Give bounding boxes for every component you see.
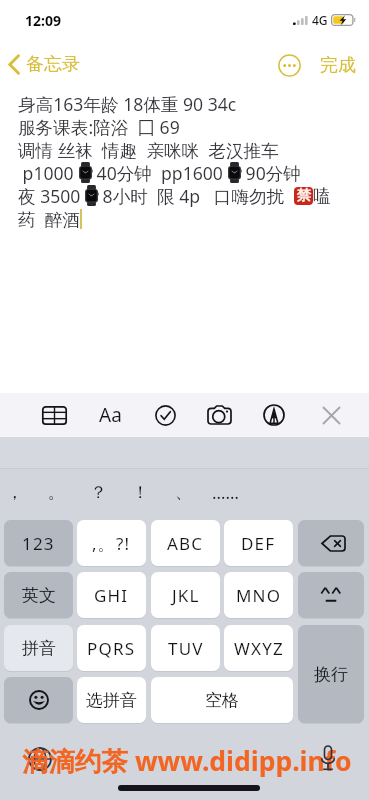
button[interactable]: MNO [224,572,293,618]
staticText: 身高163年龄 18体重 90 34c [18,92,237,115]
staticText: ABC [167,532,204,555]
button[interactable]: ,。?! [77,520,146,566]
staticText: 换行 [314,664,348,685]
button[interactable]: ！ [119,470,161,515]
staticText: 滴滴约茶 www.didipp.info [22,743,352,779]
button[interactable]: Kaomoji [298,572,364,618]
staticText: 8小时 限 4p 口嗨勿扰 [98,184,294,207]
button[interactable]: PQRS [77,625,146,671]
button[interactable] [4,677,73,723]
button[interactable]: 备忘录 [7,53,80,76]
staticText: MNO [236,584,282,607]
staticText: PQRS [87,637,136,660]
staticText: 空格 [205,690,239,711]
staticText: 英文 [22,585,56,606]
staticText: 4G [312,12,328,28]
button[interactable]: ABC [151,520,220,566]
staticText: …… [212,481,239,504]
button[interactable] [205,393,233,437]
button[interactable]: 空格 [151,677,293,723]
staticText: TUV [168,637,204,660]
staticText: 123 [22,532,55,555]
button[interactable] [262,393,286,437]
staticText: ， [6,482,23,503]
button[interactable]: 123 [4,520,73,566]
button[interactable]: 完成 [320,54,356,77]
button[interactable]: WXYZ [224,625,293,671]
button[interactable]: GHI [77,572,146,618]
staticText: ,。?! [92,532,131,555]
button[interactable]: 换行 [298,625,364,723]
staticText: GHI [94,584,129,607]
staticText: 。 [48,482,65,503]
staticText: 12:09 [25,11,61,30]
staticText: 备忘录 [26,53,80,76]
button[interactable]: Dictation [320,745,336,772]
button[interactable]: TUV [151,625,220,671]
staticText: 40分钟 pp1600 [92,161,228,184]
staticText: 调情 丝袜 情趣 亲咪咪 老汉推车 [18,138,279,161]
button[interactable]: Aa [93,393,127,437]
button[interactable]: ， [0,470,35,515]
staticText: 夜 3500 [18,184,85,207]
button[interactable]: 拼音 [4,625,73,671]
staticText: ？ [90,482,107,503]
button[interactable]: 、 [162,470,204,515]
button[interactable] [153,393,177,437]
button[interactable]: Switch keyboard [28,747,52,771]
staticText: 拼音 [22,638,56,659]
button[interactable]: More options [278,54,301,77]
button[interactable]: 。 [35,470,77,515]
staticText: 、 [175,482,192,503]
staticText: 嗑 [313,185,331,207]
button[interactable] [41,393,67,437]
staticText: p1000 [18,161,79,184]
button[interactable]: DEF [224,520,293,566]
button[interactable] [298,572,364,618]
button[interactable]: ？ [77,470,119,515]
staticText: 90分钟 [241,161,301,184]
staticText: ！ [132,482,149,503]
button[interactable]: Delete [298,520,364,566]
staticText: JKL [172,584,200,607]
button[interactable] [298,520,364,566]
staticText: WXYZ [234,637,284,660]
staticText: Aa [99,402,122,428]
button[interactable]: 选拼音 [77,677,146,723]
staticText: 药 醉酒 [18,207,80,230]
button[interactable]: JKL [151,572,220,618]
staticText: 选拼音 [86,690,137,711]
staticText: 服务课表:陪浴 囗 69 [18,115,180,138]
staticText: DEF [241,532,276,555]
staticText: 禁 [297,187,311,205]
button[interactable]: 英文 [4,572,73,618]
staticText: 完成 [320,54,356,77]
button[interactable] [319,393,343,437]
button[interactable]: …… [204,470,246,515]
button[interactable]: Emoji [4,677,73,723]
